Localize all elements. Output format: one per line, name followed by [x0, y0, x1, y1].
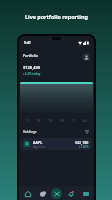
- button[interactable]: ALL: [83, 119, 88, 123]
- staticText: Live portfolio reporting: [25, 13, 88, 20]
- button[interactable]: Home: [22, 188, 33, 199]
- staticText: $128,430: [23, 65, 41, 70]
- button[interactable]: 1Y: [72, 119, 76, 123]
- button[interactable]: Trade: [51, 188, 62, 199]
- button[interactable]: A: [21, 138, 92, 150]
- button[interactable]: More: [80, 188, 91, 199]
- staticText: +1.82%: [79, 145, 89, 149]
- button[interactable]: Portfolio: [37, 188, 48, 199]
- button[interactable]: Sort: [84, 129, 90, 135]
- button[interactable]: 6M: [60, 119, 65, 123]
- button[interactable]: 1W: [36, 119, 41, 123]
- staticText: 9:41: [24, 40, 31, 45]
- staticText: +2.4% today: [23, 72, 41, 76]
- staticText: Holdings: [23, 130, 37, 134]
- button[interactable]: 1M: [48, 119, 53, 123]
- button[interactable]: Profile: [82, 53, 90, 61]
- button[interactable]: 1D: [25, 119, 29, 123]
- staticText: Apple Inc.: [33, 145, 47, 149]
- staticText: A: [26, 142, 29, 146]
- staticText: $42,180: [75, 140, 89, 145]
- button[interactable]: Alerts: [65, 188, 76, 199]
- staticText: AAPL: [33, 140, 43, 145]
- staticText: Portfolio: [23, 53, 38, 58]
